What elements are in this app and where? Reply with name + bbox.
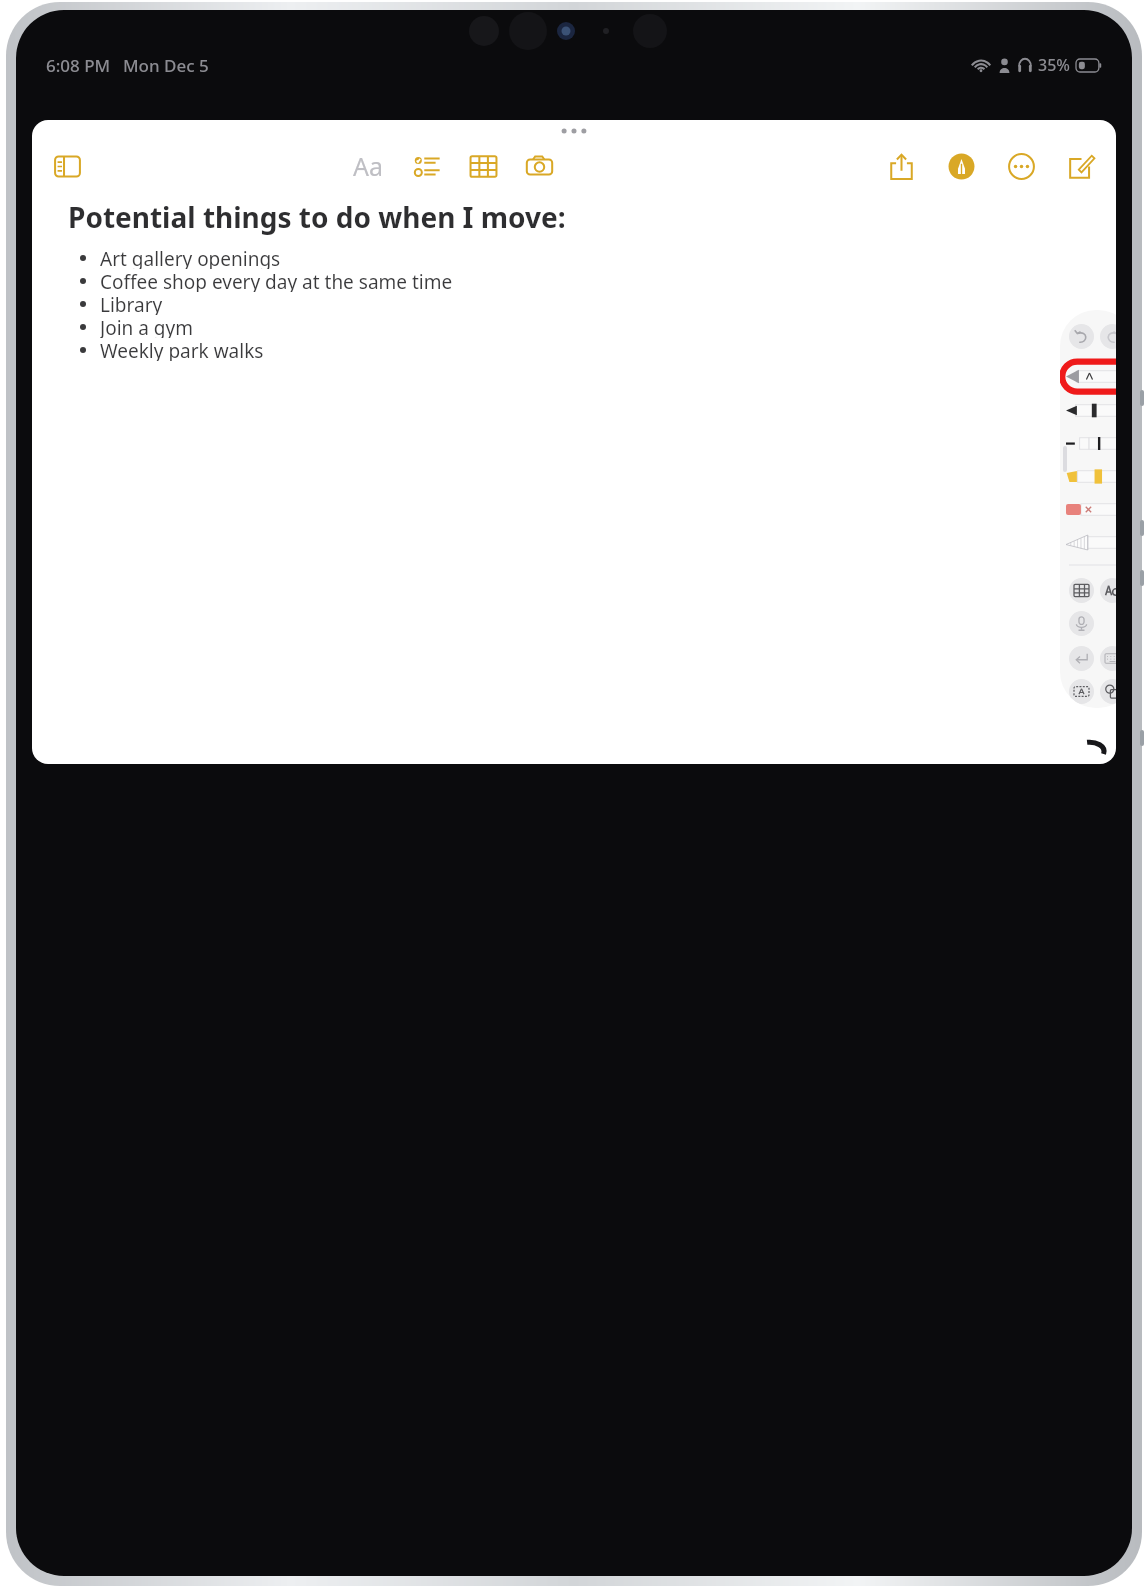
staticText: Aa: [353, 149, 384, 183]
button[interactable]: Lasso: [1060, 526, 1116, 559]
button[interactable]: Camera: [518, 145, 560, 187]
button[interactable]: Marker: [1060, 393, 1116, 427]
button[interactable]: Dictate: [1069, 611, 1094, 636]
button[interactable]: Text style: [1100, 578, 1116, 603]
button[interactable]: Insert space: [1069, 646, 1094, 671]
button[interactable]: Share: [880, 145, 922, 187]
staticText: Library: [100, 292, 163, 315]
button[interactable]: Compose: [1060, 145, 1102, 187]
button[interactable]: Eraser: [1060, 493, 1116, 526]
button[interactable]: Shapes: [1100, 679, 1116, 704]
staticText: Coffee shop every day at the same time: [100, 269, 453, 292]
button[interactable]: Checklist: [406, 145, 448, 187]
staticText: Join a gym: [100, 315, 194, 338]
staticText: 6:08 PM: [46, 54, 111, 77]
button[interactable]: Undo: [1069, 324, 1094, 349]
staticText: 35%: [1038, 54, 1070, 76]
button[interactable]: Markup: [940, 145, 982, 187]
button[interactable]: More: [1000, 145, 1042, 187]
button[interactable]: Pencil: [1060, 427, 1116, 460]
button[interactable]: Insert table: [1069, 578, 1094, 603]
button[interactable]: Scan text: [1069, 679, 1094, 704]
button[interactable]: Redo: [1100, 324, 1116, 349]
button[interactable]: Highlighter: [1060, 460, 1116, 493]
button[interactable]: Aa: [344, 142, 392, 190]
button[interactable]: Sidebar: [46, 145, 88, 187]
button[interactable]: Table: [462, 145, 504, 187]
staticText: Weekly park walks: [100, 338, 264, 361]
staticText: Art gallery openings: [100, 246, 281, 269]
staticText: Mon Dec 5: [123, 54, 209, 77]
staticText: Potential things to do when I move:: [68, 198, 566, 236]
button[interactable]: Pen: [1060, 359, 1116, 393]
button[interactable]: Keyboard: [1100, 646, 1116, 671]
